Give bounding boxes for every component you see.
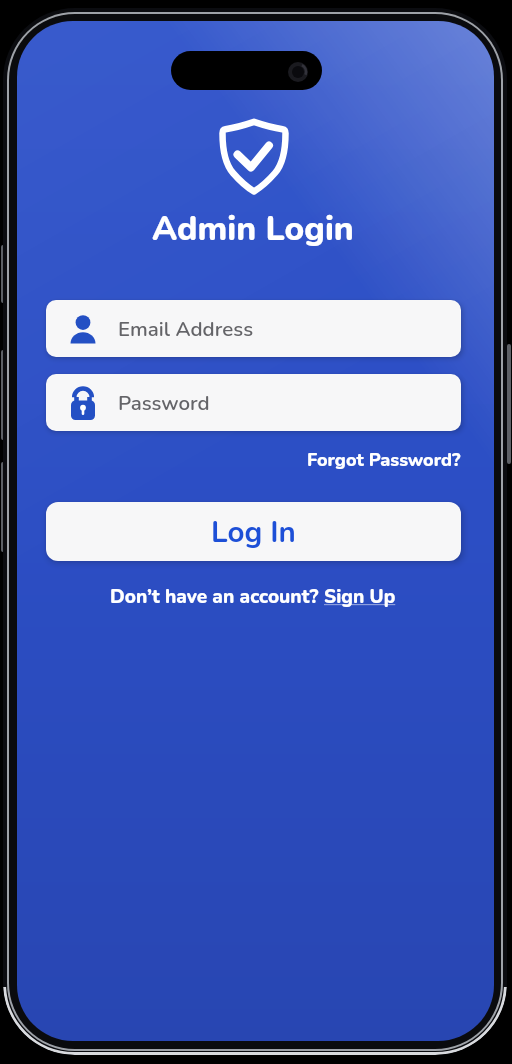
staticText: Don’t have an account?: [110, 584, 324, 610]
staticText: Password: [118, 389, 210, 417]
button[interactable]: Password: [46, 374, 461, 431]
staticText: Admin Login: [152, 206, 354, 252]
staticText: Email Address: [118, 315, 254, 343]
button[interactable]: Log In: [46, 502, 461, 561]
staticText: Log In: [211, 512, 296, 552]
button[interactable]: Email Address: [46, 300, 461, 357]
button[interactable]: Forgot Password?: [307, 448, 461, 473]
button[interactable]: Sign Up: [324, 584, 396, 610]
